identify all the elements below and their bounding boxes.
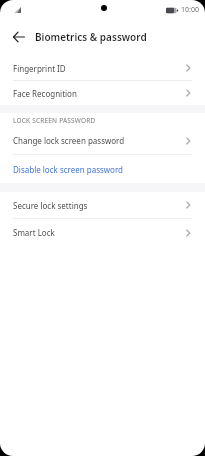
staticText: Biometrics & password xyxy=(35,30,147,44)
button[interactable]: Face Recognition xyxy=(0,81,205,105)
staticText: 10:00 xyxy=(181,5,199,15)
button[interactable]: Secure lock settings xyxy=(0,192,205,218)
button[interactable] xyxy=(13,31,25,43)
button[interactable]: Change lock screen password xyxy=(0,127,205,154)
staticText: LOCK SCREEN PASSWORD xyxy=(13,116,96,125)
button[interactable]: Smart Lock xyxy=(0,219,205,246)
button[interactable]: Fingerprint ID xyxy=(0,56,205,80)
staticText: Disable lock screen password xyxy=(13,164,124,175)
staticText: Change lock screen password xyxy=(13,135,125,146)
staticText: Secure lock settings xyxy=(13,200,88,211)
staticText: Face Recognition xyxy=(13,88,77,99)
staticText: Smart Lock xyxy=(13,227,55,238)
staticText: Fingerprint ID xyxy=(13,63,66,74)
button[interactable]: Disable lock screen password xyxy=(0,155,205,183)
